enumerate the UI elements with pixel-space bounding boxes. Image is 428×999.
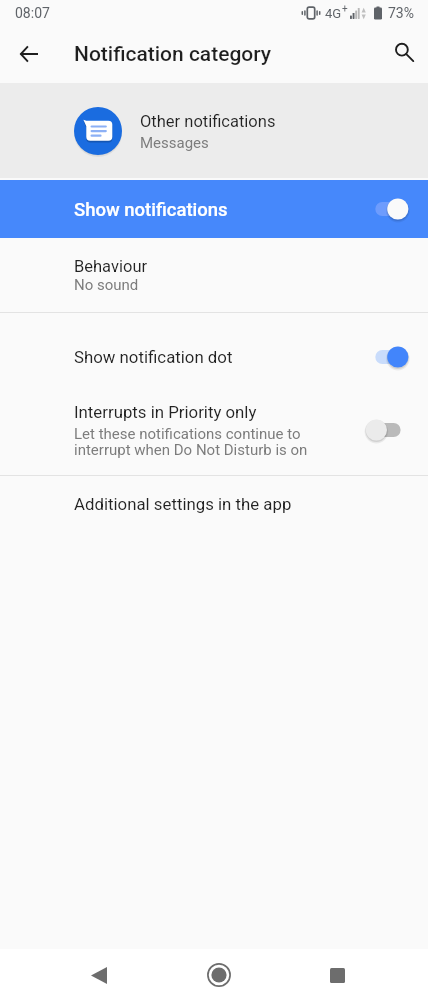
button[interactable]: Interrupts in Priority only bbox=[0, 401, 428, 475]
button[interactable]: Show notifications bbox=[0, 180, 428, 238]
button[interactable]: Back bbox=[11, 36, 47, 72]
button[interactable]: Search bbox=[385, 33, 423, 71]
staticText: Let these notifications continue to inte… bbox=[74, 425, 308, 458]
staticText: Show notification dot bbox=[74, 347, 233, 367]
staticText: Notification category bbox=[74, 42, 272, 67]
button[interactable]: Home bbox=[199, 955, 239, 995]
staticText: 4G bbox=[325, 6, 342, 21]
staticText: Show notifications bbox=[74, 199, 228, 221]
button[interactable]: Back bbox=[79, 955, 119, 995]
staticText: 08:07 bbox=[15, 5, 50, 21]
staticText: Messages bbox=[140, 134, 209, 152]
staticText: + bbox=[342, 3, 348, 15]
staticText: Behaviour bbox=[74, 257, 148, 276]
staticText: Additional settings in the app bbox=[74, 494, 292, 514]
button[interactable]: Behaviour bbox=[0, 238, 428, 312]
button[interactable]: Show notification dot bbox=[0, 313, 428, 401]
button[interactable]: Recents bbox=[317, 955, 357, 995]
staticText: No sound bbox=[74, 276, 139, 294]
staticText: Other notifications bbox=[140, 112, 276, 131]
button[interactable]: Additional settings in the app bbox=[0, 476, 428, 531]
staticText: 73% bbox=[388, 5, 414, 21]
staticText: Interrupts in Priority only bbox=[74, 402, 257, 422]
